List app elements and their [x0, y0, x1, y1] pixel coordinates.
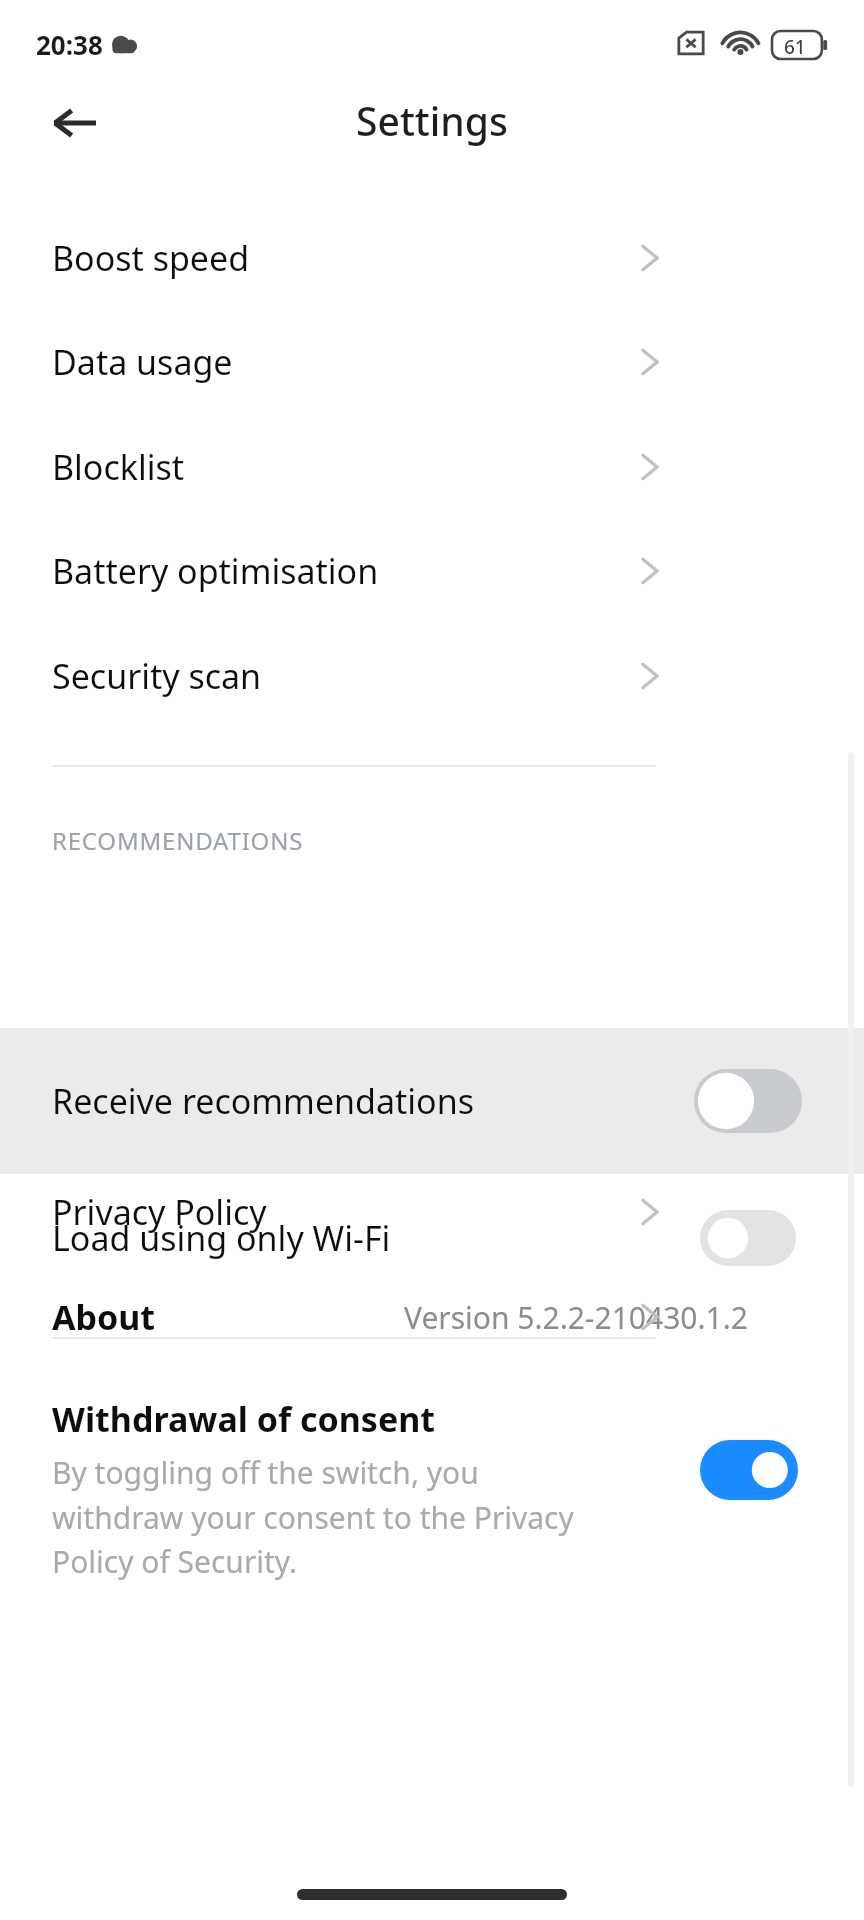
button[interactable]: Withdrawal of consent toggle [700, 1440, 798, 1500]
button[interactable]: Load using only Wi-Fi [0, 1174, 864, 1302]
staticText: About [52, 1294, 156, 1340]
staticText: Receive recommendations [52, 1078, 474, 1124]
button[interactable]: Privacy Policy [0, 1160, 864, 1264]
staticText: Privacy Policy [52, 1189, 267, 1235]
staticText: Security scan [52, 653, 262, 699]
staticText: Battery optimisation [52, 548, 379, 594]
button[interactable]: About [0, 1265, 864, 1369]
button[interactable]: Back [34, 82, 116, 164]
staticText: Load using only Wi-Fi [52, 1215, 391, 1261]
button[interactable]: Receive recommendations [0, 1028, 864, 1174]
button[interactable]: Battery optimisation [0, 519, 864, 623]
staticText: Blocklist [52, 444, 185, 490]
button[interactable] [0, 1160, 864, 1264]
staticText: Withdrawal of consent [52, 1396, 436, 1442]
button[interactable]: Load using only Wi-Fi toggle [700, 1210, 796, 1266]
staticText: Data usage [52, 339, 233, 385]
staticText: 61 [784, 34, 806, 60]
button[interactable]: Data usage [0, 310, 864, 414]
staticText: 20:38 [36, 27, 103, 62]
button[interactable]: Security scan [0, 624, 864, 728]
staticText: Settings [0, 94, 864, 147]
button[interactable]: Withdrawal of consent [0, 1370, 864, 1590]
staticText: Boost speed [52, 235, 250, 281]
staticText: By toggling off the switch, you withdraw… [52, 1452, 612, 1581]
button[interactable]: Blocklist [0, 415, 864, 519]
button[interactable]: Receive recommendations toggle [694, 1069, 802, 1133]
staticText: Version 5.2.2-210430.1.2 [404, 1297, 748, 1338]
staticText: RECOMMENDATIONS [52, 824, 304, 857]
button[interactable]: Boost speed [0, 206, 864, 310]
